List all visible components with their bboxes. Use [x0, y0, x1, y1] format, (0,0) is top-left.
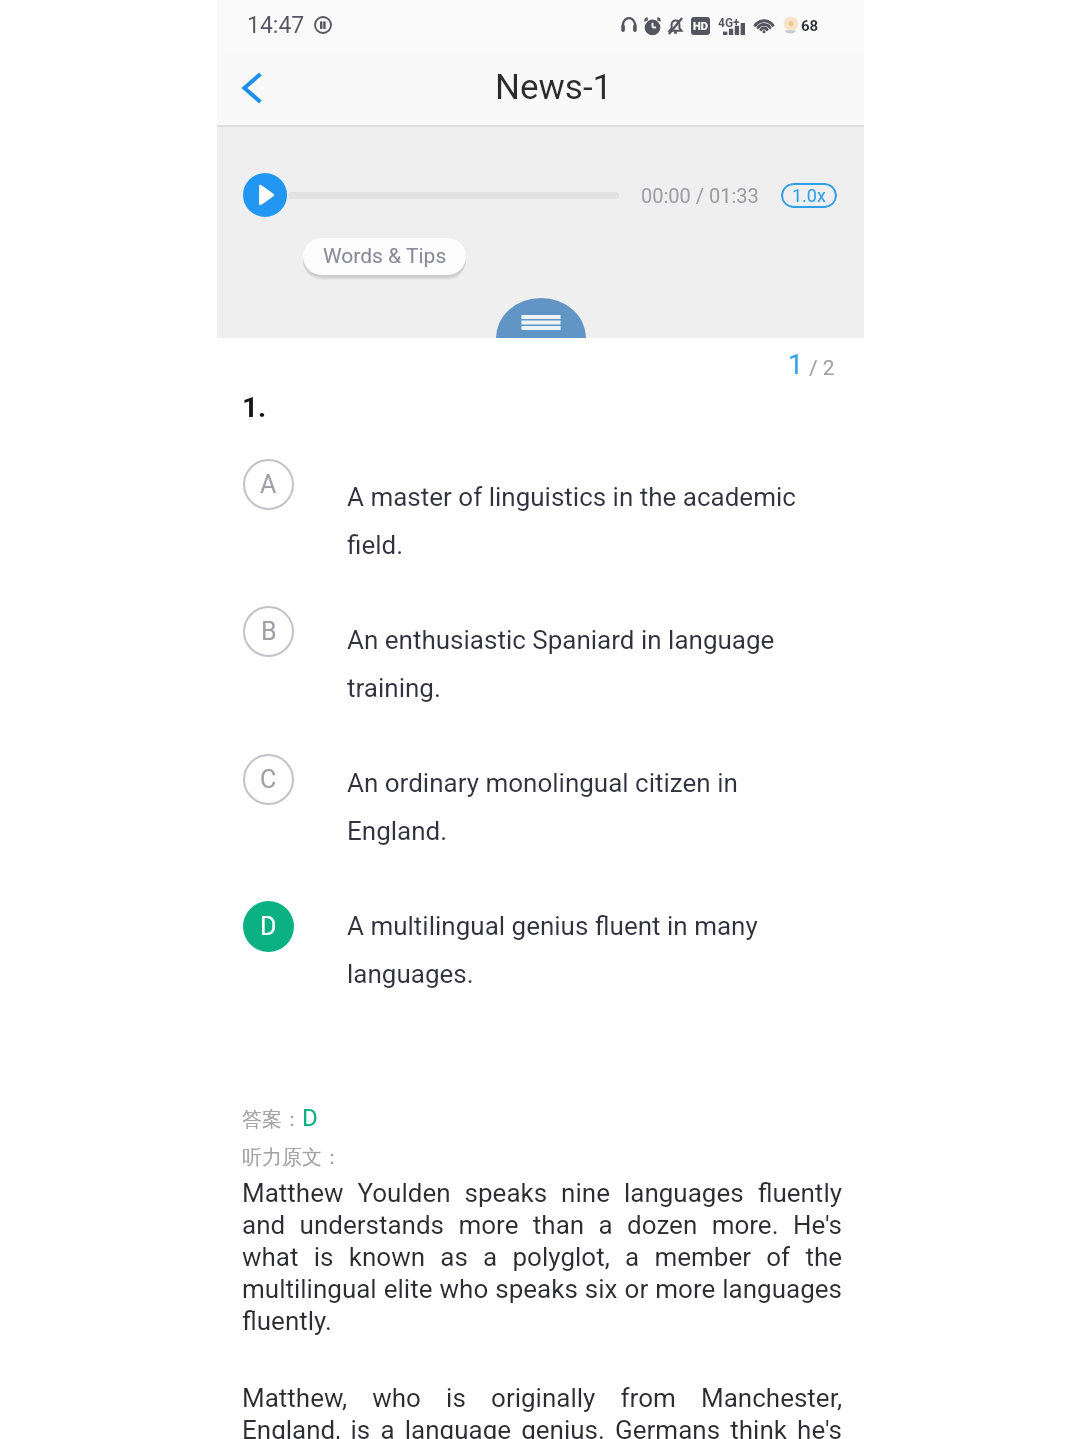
- staticText: D: [302, 1104, 318, 1132]
- staticText: News-1: [495, 67, 613, 108]
- staticText: B: [261, 617, 277, 646]
- staticText: A multilingual genius fluent in many lan…: [347, 911, 815, 989]
- staticText: 答案：: [242, 1107, 302, 1132]
- staticText: Words & Tips: [323, 244, 447, 269]
- staticText: / 2: [809, 356, 835, 381]
- button[interactable]: A: [243, 459, 815, 560]
- staticText: 14:47: [247, 12, 305, 39]
- staticText: Matthew, who is originally from Manchest…: [242, 1383, 842, 1439]
- button[interactable]: C: [243, 745, 815, 846]
- staticText: D: [260, 912, 277, 941]
- staticText: Matthew Youlden speaks nine languages fl…: [242, 1178, 842, 1337]
- staticText: HD: [693, 20, 708, 33]
- staticText: 1.: [242, 391, 267, 424]
- staticText: An enthusiastic Spaniard in language tra…: [347, 625, 815, 703]
- staticText: 听力原文：: [242, 1145, 342, 1170]
- button[interactable]: 1.0x: [781, 183, 837, 208]
- staticText: 4G+: [718, 16, 740, 30]
- staticText: A master of linguistics in the academic …: [347, 482, 815, 560]
- button[interactable]: D: [243, 888, 815, 989]
- button[interactable]: Show transcript: [496, 298, 586, 338]
- staticText: A: [260, 470, 277, 499]
- staticText: C: [260, 765, 277, 794]
- button[interactable]: Back: [217, 50, 287, 125]
- staticText: 68: [801, 17, 819, 35]
- button[interactable]: Play: [243, 173, 287, 217]
- staticText: 1.0x: [792, 185, 826, 206]
- staticText: An ordinary monolingual citizen in Engla…: [347, 768, 815, 846]
- staticText: 00:00 / 01:33: [641, 184, 759, 207]
- staticText: 1: [788, 349, 804, 381]
- button[interactable]: Words & Tips: [303, 238, 466, 275]
- button[interactable]: B: [243, 602, 815, 703]
